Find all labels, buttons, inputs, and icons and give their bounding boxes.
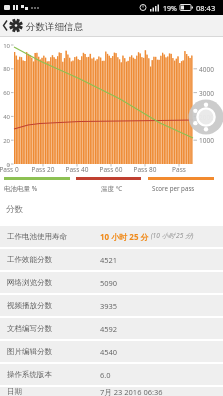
staticText: 操作系统版本 (7, 370, 52, 379)
staticText: 分数详细信息 (26, 21, 83, 33)
staticText: 工作效能分数 (7, 255, 52, 264)
staticText: 工作电池使用寿命 (7, 232, 67, 241)
staticText: 文档编写分数 (7, 324, 52, 333)
staticText: 19% (163, 4, 177, 14)
staticText: 4000 (199, 65, 214, 74)
staticText: Pass 0 (0, 165, 22, 174)
button[interactable]: 工作电池使用寿命 (0, 226, 223, 247)
button[interactable] (188, 99, 223, 135)
staticText: 3000 (199, 89, 214, 98)
staticText: 10 小时 25 分 (100, 231, 149, 242)
staticText: 3935 (100, 301, 118, 311)
staticText: 网络浏览分数 (7, 278, 52, 287)
staticText: Pass 20 (30, 165, 56, 174)
staticText: 60 (0, 89, 10, 97)
button[interactable]: 视频播放分数 (0, 295, 223, 316)
staticText: Pass 40 (64, 165, 90, 174)
button[interactable] (0, 15, 24, 37)
staticText: 1000 (199, 136, 214, 145)
staticText: 40 (0, 113, 10, 121)
button[interactable]: 网络浏览分数 (0, 272, 223, 293)
staticText: 6.0 (100, 370, 111, 380)
button[interactable]: 文档编写分数 (0, 318, 223, 339)
staticText: 80 (0, 65, 10, 73)
staticText: 电池电量 % (4, 184, 38, 193)
staticText: 图片编辑分数 (7, 347, 52, 356)
button[interactable]: 图片编辑分数 (0, 341, 223, 362)
staticText: Pass 100 (166, 165, 192, 174)
staticText: 20 (0, 137, 10, 145)
staticText: 2000 (199, 113, 214, 122)
staticText: (10 小时 25 分) (149, 231, 194, 240)
staticText: 100 (0, 42, 10, 50)
staticText: 4521 (100, 255, 118, 265)
staticText: 0 (0, 161, 10, 169)
staticText: 08:43 (196, 3, 216, 13)
staticText: 温度 ℃ (101, 184, 123, 193)
staticText: 4592 (100, 324, 118, 334)
button[interactable]: 日期 (0, 387, 223, 396)
staticText: 日期 (7, 387, 22, 396)
staticText: 分数 (6, 204, 23, 215)
staticText: Score per pass (152, 184, 195, 192)
button[interactable]: 操作系统版本 (0, 364, 223, 385)
staticText: 7月 23 2016 06:36 (100, 387, 163, 396)
button[interactable]: 工作效能分数 (0, 249, 223, 270)
staticText: 5090 (100, 278, 118, 288)
staticText: 4540 (100, 347, 118, 357)
staticText: Pass 60 (98, 165, 124, 174)
staticText: Pass 80 (132, 165, 158, 174)
staticText: 视频播放分数 (7, 301, 52, 310)
